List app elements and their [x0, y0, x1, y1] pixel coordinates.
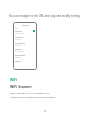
- staticText: WiFi Scanner: [10, 84, 32, 89]
- staticText: WiFi: [10, 78, 17, 82]
- staticText: Open 'Settings' in 'Wi-Fi' available API…: [10, 92, 56, 99]
- button[interactable]: WiFi: [10, 78, 17, 82]
- staticText: You can navigate to the URL and copy and…: [9, 14, 81, 18]
- button[interactable]: [13, 22, 37, 70]
